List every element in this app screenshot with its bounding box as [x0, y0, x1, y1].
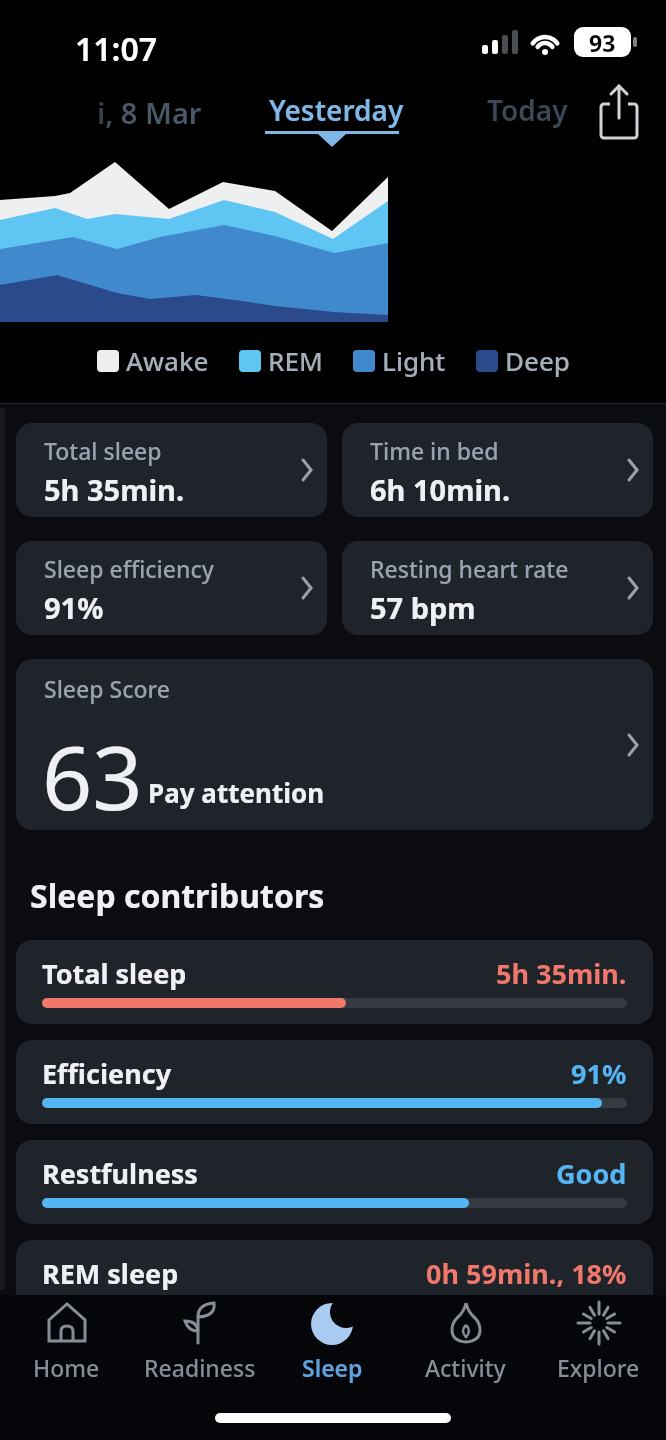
staticText: Yesterday [269, 91, 404, 129]
staticText: Pay attention [148, 775, 325, 810]
staticText: Good [556, 1155, 627, 1192]
staticText: 57 bpm [370, 588, 476, 627]
staticText: 11:07 [75, 27, 158, 71]
staticText: Resting heart rate [370, 553, 569, 584]
button[interactable]: Resting heart rate [342, 541, 653, 635]
staticText: Time in bed [370, 435, 499, 466]
staticText: REM sleep [42, 1255, 179, 1292]
staticText: Total sleep [42, 955, 187, 992]
button[interactable]: Activity [399, 1295, 532, 1383]
button[interactable]: Readiness [133, 1295, 266, 1383]
staticText: Sleep efficiency [44, 553, 214, 584]
staticText: Deep [505, 343, 570, 378]
button[interactable]: REM sleep [16, 1240, 653, 1324]
button[interactable]: Today [470, 85, 585, 140]
button[interactable]: Sleep efficiency [16, 541, 327, 635]
staticText: Explore [557, 1352, 640, 1383]
button[interactable]: Sleep [266, 1295, 399, 1383]
staticText: Light [382, 343, 446, 378]
staticText: 6h 10min. [370, 470, 511, 509]
button[interactable]: Sleep Score [16, 659, 653, 830]
staticText: 0h 59min., 18% [426, 1255, 627, 1292]
button[interactable]: Yesterday [250, 85, 415, 150]
staticText: Awake [126, 343, 209, 378]
staticText: Sleep contributors [30, 874, 325, 918]
staticText: Home [33, 1352, 100, 1383]
staticText: Sleep [302, 1352, 363, 1383]
button[interactable]: Time in bed [342, 423, 653, 517]
staticText: Today [487, 91, 568, 129]
staticText: Restfulness [42, 1155, 198, 1192]
staticText: REM [268, 343, 323, 378]
staticText: 91% [44, 588, 104, 627]
staticText: Efficiency [42, 1055, 172, 1092]
staticText: 63 [42, 716, 143, 830]
staticText: Readiness [144, 1352, 256, 1383]
button[interactable]: Restfulness [16, 1140, 653, 1224]
staticText: Activity [425, 1352, 506, 1383]
button[interactable]: Total sleep [16, 423, 327, 517]
staticText: 5h 35min. [496, 955, 627, 992]
staticText: Total sleep [44, 435, 162, 466]
button[interactable]: Explore [532, 1295, 665, 1383]
button[interactable]: Home [0, 1295, 133, 1383]
staticText: 93 [589, 27, 616, 57]
staticText: Sleep Score [44, 673, 170, 704]
button[interactable] [596, 84, 642, 140]
staticText: 91% [571, 1055, 627, 1092]
staticText: 5h 35min. [44, 470, 185, 509]
button[interactable]: Total sleep [16, 940, 653, 1024]
button[interactable]: Efficiency [16, 1040, 653, 1124]
staticText: i, 8 Mar [97, 93, 202, 132]
